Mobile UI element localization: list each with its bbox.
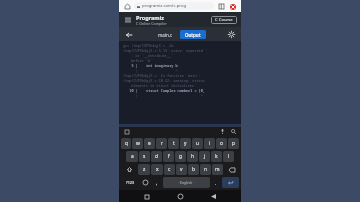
button[interactable]: Back <box>123 29 134 40</box>
staticText: /tmp/CUPUh4qjX.c:10:32: warning: excess <box>123 78 205 83</box>
button[interactable]: k <box>211 151 222 162</box>
button[interactable]: Home <box>175 191 186 202</box>
staticText: 5 | int imaginary b <box>123 63 178 68</box>
button[interactable]: d <box>151 151 162 162</box>
button[interactable]: Enter <box>222 177 239 188</box>
button[interactable]: s <box>139 151 150 162</box>
staticText: Programiz <box>136 14 165 21</box>
button[interactable]: h <box>187 151 198 162</box>
staticText: r <box>161 140 163 147</box>
button[interactable]: Search <box>230 128 237 135</box>
button[interactable]: o <box>216 138 227 149</box>
staticText: e <box>148 140 151 147</box>
staticText: k <box>215 153 218 160</box>
button[interactable]: r <box>156 138 167 149</box>
staticText: ' or '__attribute__' <box>131 53 173 58</box>
button[interactable]: t <box>168 138 179 149</box>
staticText: programiz.com/c-prog <box>142 3 187 9</box>
button[interactable]: programiz.com/c-prog <box>137 2 211 10</box>
staticText: , <box>156 180 158 186</box>
button[interactable]: Backspace <box>224 164 239 175</box>
button[interactable]: Recents <box>141 191 152 202</box>
button[interactable]: e <box>144 138 155 149</box>
staticText: gcc /tmp/CUPUh4qjX.c -lm <box>123 43 174 48</box>
staticText: C Online Compiler <box>136 21 167 26</box>
button[interactable]: f <box>163 151 174 162</box>
button[interactable]: m <box>212 164 223 175</box>
button[interactable]: , <box>152 177 162 188</box>
button[interactable]: Theme <box>226 29 237 40</box>
staticText: 10 | struct Complex number1 = {0, <box>123 88 205 93</box>
staticText: q <box>125 140 128 147</box>
button[interactable]: a <box>126 151 138 162</box>
staticText: f <box>168 153 170 160</box>
button[interactable]: Output <box>185 30 201 39</box>
button[interactable]: Menu <box>123 15 133 25</box>
button[interactable]: Home <box>123 2 132 11</box>
staticText: t <box>173 140 175 147</box>
staticText: o <box>220 140 223 147</box>
button[interactable]: i <box>204 138 215 149</box>
staticText: Output <box>185 32 201 38</box>
button[interactable]: main.c <box>158 30 173 39</box>
button[interactable]: · English · <box>163 177 210 188</box>
staticText: main.c <box>158 32 173 38</box>
staticText: · English · <box>178 180 195 185</box>
button[interactable]: Back <box>208 191 219 202</box>
staticText: s <box>143 153 146 160</box>
staticText: . <box>215 180 217 186</box>
button[interactable]: Stop loading <box>228 2 237 11</box>
staticText: j <box>204 153 206 160</box>
button[interactable]: Voice input <box>219 128 226 135</box>
button[interactable]: j <box>199 151 210 162</box>
staticText: g <box>179 153 182 160</box>
staticText: i <box>209 140 211 147</box>
staticText: l <box>228 153 230 160</box>
button[interactable]: p <box>228 138 239 149</box>
button[interactable]: n <box>200 164 211 175</box>
staticText: /tmp/CUPUh4qjX.c:5:19: error: expected ' <box>123 48 207 53</box>
button[interactable]: g <box>175 151 186 162</box>
staticText: b <box>192 166 195 173</box>
button[interactable]: z <box>138 164 150 175</box>
staticText: n <box>204 166 207 173</box>
staticText: h <box>191 153 194 160</box>
staticText: before 'b' <box>131 58 152 63</box>
staticText: v <box>180 166 183 173</box>
button[interactable]: q <box>121 138 131 149</box>
button[interactable]: Emoji <box>140 177 151 188</box>
staticText: c <box>168 166 171 173</box>
button[interactable]: Clipboard <box>123 128 130 135</box>
button[interactable]: b <box>188 164 199 175</box>
staticText: w <box>136 140 140 147</box>
staticText: m <box>215 166 220 173</box>
button[interactable]: ?123 <box>121 177 139 188</box>
staticText: ?123 <box>126 180 135 185</box>
button[interactable]: v <box>176 164 187 175</box>
button[interactable]: . <box>211 177 221 188</box>
staticText: z <box>143 166 146 173</box>
staticText: x <box>156 166 159 173</box>
staticText: d <box>155 153 158 160</box>
button[interactable]: l <box>223 151 234 162</box>
button[interactable]: y <box>180 138 191 149</box>
staticText: elements in struct initializer <box>131 83 194 88</box>
staticText: u <box>196 140 199 147</box>
button[interactable]: x <box>151 164 163 175</box>
staticText: p <box>232 140 235 147</box>
button[interactable]: C Course <box>215 16 233 24</box>
button[interactable]: w <box>132 138 143 149</box>
staticText: /tmp/CUPUh4qjX.c: In function 'main': <box>123 73 201 78</box>
staticText: y <box>184 140 187 147</box>
button[interactable]: u <box>192 138 203 149</box>
staticText: C Course <box>215 17 233 23</box>
button[interactable]: Tabs <box>217 2 226 11</box>
button[interactable]: c <box>164 164 175 175</box>
staticText: a <box>131 153 134 160</box>
button[interactable]: Shift <box>121 164 137 175</box>
